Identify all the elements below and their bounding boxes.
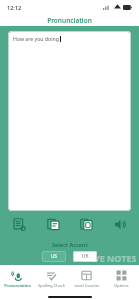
- button[interactable]: UK: [73, 251, 97, 262]
- staticText: Pronunciation: [47, 16, 92, 25]
- staticText: Pronunciation: [4, 283, 31, 288]
- staticText: US: [51, 253, 58, 260]
- staticText: Spelling Check: [38, 283, 65, 288]
- staticText: Options: [114, 283, 129, 288]
- button[interactable]: Copy: [77, 215, 95, 233]
- button[interactable]: How are you doing: [8, 31, 131, 211]
- staticText: How are you doing: [13, 35, 59, 42]
- staticText: SAVE NOTES: [83, 252, 137, 264]
- staticText: Select Accent: [52, 241, 88, 248]
- staticText: 12:12: [7, 4, 22, 11]
- staticText: word Counter: [74, 283, 100, 288]
- button[interactable]: US: [42, 251, 66, 262]
- staticText: UK: [82, 253, 89, 260]
- button[interactable]: Translate: [10, 215, 28, 233]
- button[interactable]: word Counter: [69, 265, 104, 293]
- button[interactable]: Speak: [111, 215, 129, 233]
- button[interactable]: Pronunciation: [0, 265, 34, 293]
- button[interactable]: Spelling Check: [34, 265, 69, 293]
- button[interactable]: Options: [104, 265, 139, 293]
- button[interactable]: Paste: [44, 215, 62, 233]
